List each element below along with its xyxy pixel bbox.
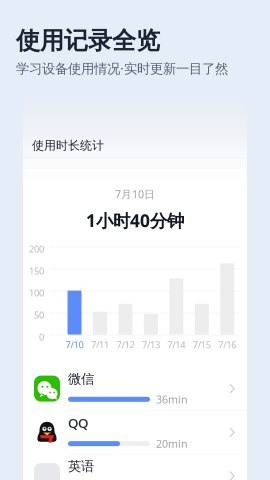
staticText: 7/16 xyxy=(218,338,236,351)
button[interactable]: QQ xyxy=(23,411,247,454)
button[interactable]: 英语 xyxy=(23,454,247,480)
staticText: 学习设备使用情况·实时更新一目了然 xyxy=(16,59,228,77)
staticText: 100 xyxy=(29,287,44,299)
staticText: 7/13 xyxy=(142,338,160,351)
staticText: 20min xyxy=(156,437,188,451)
staticText: QQ xyxy=(68,414,88,432)
staticText: 36min xyxy=(156,392,188,406)
staticText: 150 xyxy=(29,265,44,277)
staticText: 7月10日 xyxy=(115,187,155,201)
staticText: 英语 xyxy=(68,458,94,475)
staticText: 使用记录全览 xyxy=(16,26,160,55)
staticText: 7/12 xyxy=(116,338,134,351)
staticText: 200 xyxy=(29,243,44,255)
staticText: 微信 xyxy=(68,371,94,387)
button[interactable]: 微信 xyxy=(23,367,247,410)
staticText: 0 xyxy=(39,331,44,343)
staticText: 7/14 xyxy=(167,338,185,351)
staticText: 50 xyxy=(34,309,44,321)
staticText: 7/15 xyxy=(193,338,211,351)
staticText: 1小时40分钟 xyxy=(86,209,184,232)
staticText: 7/10 xyxy=(65,338,83,351)
staticText: 使用时长统计 xyxy=(32,138,104,153)
staticText: 7/11 xyxy=(91,338,109,351)
